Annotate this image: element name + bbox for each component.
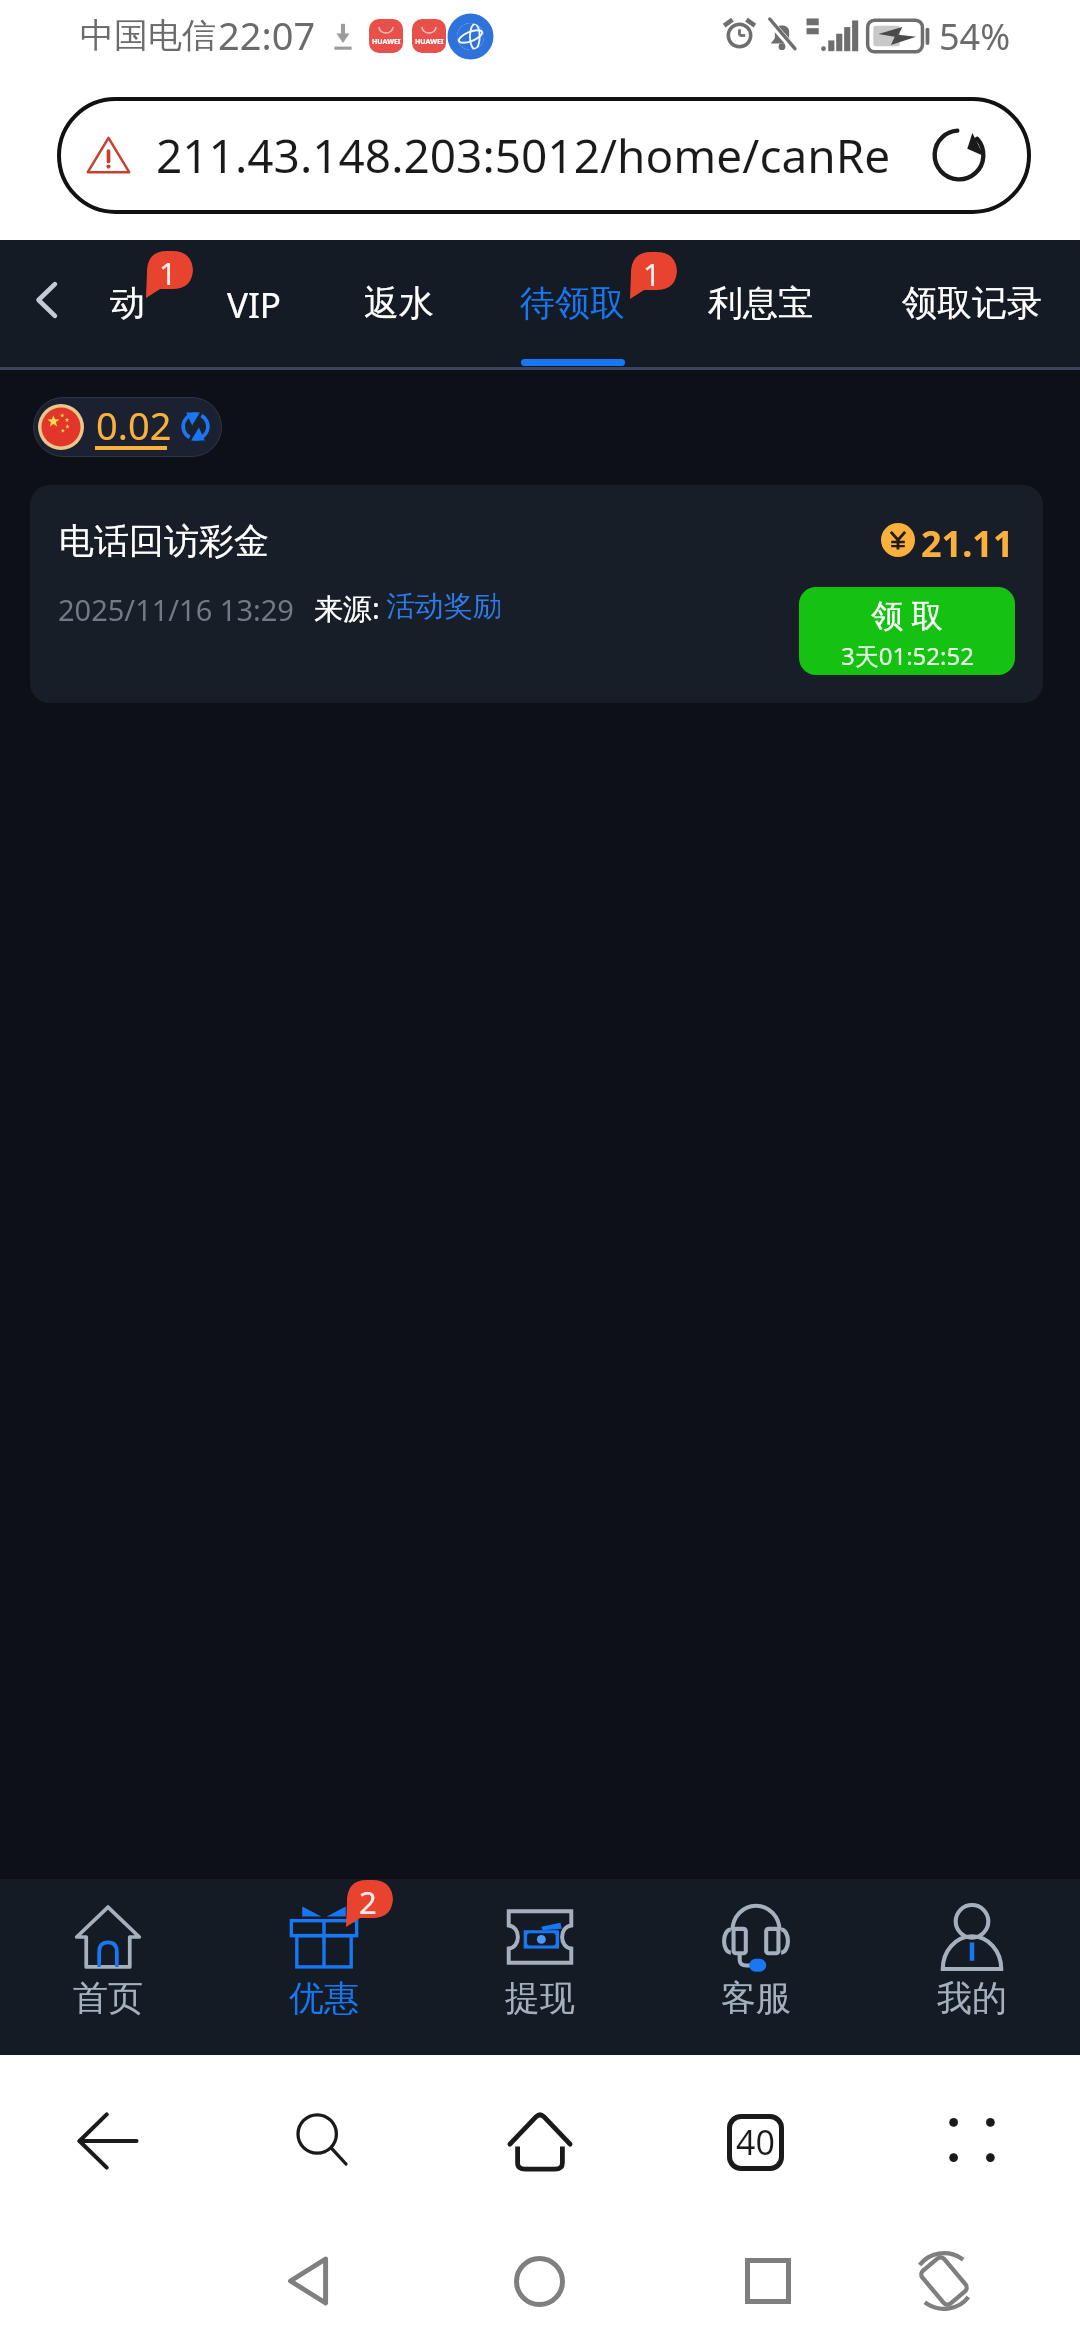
staticText: 电话回访彩金 — [59, 519, 269, 563]
staticText: 1 — [643, 253, 661, 295]
staticText: 21.11 — [921, 519, 1014, 568]
button[interactable]: 利息宝 — [686, 240, 835, 368]
staticText: 提现 — [505, 1976, 575, 2020]
staticText: 0.02 — [96, 399, 172, 451]
staticText: 1 — [159, 252, 177, 294]
staticText: 客服 — [721, 1976, 791, 2020]
staticText: 我的 — [937, 1976, 1007, 2020]
button[interactable]: Back — [63, 2098, 153, 2184]
staticText: 待领取 — [520, 281, 625, 325]
button[interactable]: 电话回访彩金 — [30, 485, 1043, 703]
button[interactable]: Reload — [919, 115, 999, 195]
staticText: VIP — [227, 281, 282, 329]
button[interactable]: 领取记录 — [880, 240, 1064, 368]
staticText: 22:07 — [218, 9, 316, 61]
button[interactable]: 211.43.148.203:5012/home/canRe — [57, 97, 1031, 214]
button[interactable]: 返水 — [342, 240, 456, 368]
button[interactable]: More options — [935, 2104, 1009, 2176]
staticText: 利息宝 — [708, 281, 813, 325]
button[interactable]: Back — [272, 2242, 345, 2320]
button[interactable]: 待领取 — [498, 240, 647, 368]
button[interactable]: 动 — [88, 240, 167, 368]
staticText: 返水 — [364, 281, 434, 325]
staticText: 领 取 — [871, 593, 944, 637]
button[interactable]: Search — [278, 2096, 366, 2184]
staticText: 中国电信 — [80, 14, 216, 57]
button[interactable]: VIP — [205, 240, 354, 368]
button[interactable]: Home — [500, 2242, 579, 2321]
button[interactable]: 我的 — [864, 1879, 1080, 2055]
staticText: 2025/11/16 13:29 — [58, 590, 294, 629]
staticText: HUAWEI — [415, 37, 444, 47]
button[interactable]: 领 取 — [799, 587, 1015, 675]
button[interactable]: 首页 — [0, 1879, 216, 2055]
staticText: 211.43.148.203:5012/home/canRe — [156, 124, 888, 187]
button[interactable]: 提现 — [432, 1879, 648, 2055]
button[interactable]: Home — [494, 2096, 586, 2185]
button[interactable]: Tabs: 40 — [725, 2112, 785, 2172]
button[interactable]: Rotate screen — [899, 2238, 989, 2324]
staticText: 领取记录 — [902, 281, 1042, 325]
staticText: 动 — [110, 281, 145, 325]
staticText: 54% — [939, 12, 1011, 61]
staticText: HUAWEI — [372, 37, 401, 47]
staticText: 2 — [359, 1881, 377, 1923]
button[interactable]: 0.02 — [33, 397, 222, 457]
button[interactable]: 2 — [216, 1879, 432, 2055]
staticText: 40 — [736, 2119, 775, 2165]
staticText: 来源: — [314, 588, 380, 628]
button[interactable]: Recents — [731, 2244, 805, 2318]
staticText: 首页 — [73, 1976, 143, 2020]
staticText: 优惠 — [289, 1976, 359, 2020]
button[interactable]: Back — [12, 266, 80, 334]
staticText: 3天01:52:52 — [841, 639, 974, 672]
button[interactable]: 客服 — [648, 1879, 864, 2055]
staticText: 活动奖励 — [386, 588, 502, 625]
